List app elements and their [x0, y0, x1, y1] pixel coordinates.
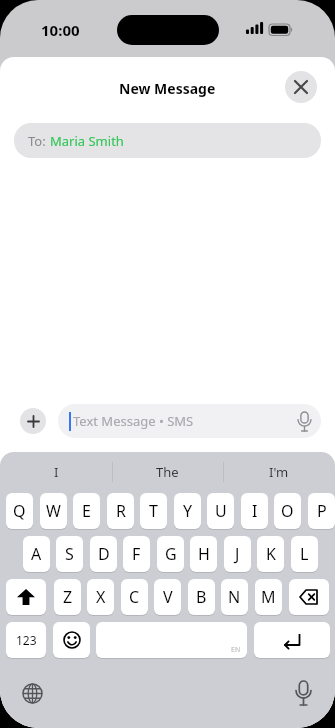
- button[interactable]: B: [188, 579, 215, 615]
- button[interactable]: D: [90, 536, 117, 572]
- staticText: B: [196, 586, 207, 608]
- button[interactable]: X: [87, 579, 114, 615]
- button[interactable]: Q: [6, 493, 33, 529]
- staticText: 10:00: [41, 20, 80, 40]
- button[interactable]: I: [0, 460, 112, 484]
- staticText: R: [116, 500, 126, 522]
- staticText: I: [54, 463, 59, 481]
- staticText: E: [82, 500, 91, 522]
- button[interactable]: I: [241, 493, 268, 529]
- button[interactable]: F: [123, 536, 150, 572]
- button[interactable]: C: [121, 579, 148, 615]
- button[interactable]: The: [112, 460, 223, 484]
- staticText: Q: [13, 500, 26, 522]
- button[interactable]: J: [224, 536, 251, 572]
- staticText: New Message: [119, 79, 216, 98]
- button[interactable]: [289, 679, 317, 707]
- staticText: H: [198, 543, 210, 565]
- button[interactable]: A: [23, 536, 50, 572]
- button[interactable]: U: [207, 493, 234, 529]
- staticText: N: [228, 586, 241, 608]
- button[interactable]: Text Message • SMS: [58, 404, 321, 438]
- button[interactable]: H: [190, 536, 217, 572]
- staticText: I'm: [269, 463, 289, 481]
- button[interactable]: I'm: [223, 460, 335, 484]
- staticText: P: [317, 500, 327, 522]
- staticText: X: [96, 586, 106, 608]
- button[interactable]: [18, 679, 46, 707]
- staticText: S: [65, 543, 74, 565]
- button[interactable]: N: [221, 579, 248, 615]
- button[interactable]: K: [257, 536, 284, 572]
- button[interactable]: Y: [174, 493, 201, 529]
- staticText: J: [235, 543, 240, 565]
- button[interactable]: EN: [96, 622, 247, 658]
- button[interactable]: E: [73, 493, 100, 529]
- staticText: O: [281, 500, 294, 522]
- staticText: V: [163, 586, 173, 608]
- staticText: Maria Smith: [50, 132, 124, 150]
- button[interactable]: R: [107, 493, 134, 529]
- staticText: 123: [16, 632, 37, 648]
- button[interactable]: [285, 71, 317, 103]
- staticText: A: [31, 543, 42, 565]
- button[interactable]: [53, 622, 90, 658]
- button[interactable]: [20, 408, 46, 434]
- staticText: W: [46, 500, 61, 522]
- staticText: Y: [183, 500, 193, 522]
- staticText: K: [266, 543, 276, 565]
- button[interactable]: P: [308, 493, 335, 529]
- staticText: F: [132, 543, 141, 565]
- staticText: M: [261, 586, 276, 608]
- button[interactable]: V: [154, 579, 181, 615]
- button[interactable]: M: [255, 579, 282, 615]
- button[interactable]: Z: [54, 579, 81, 615]
- staticText: Z: [63, 586, 73, 608]
- staticText: T: [149, 500, 158, 522]
- staticText: U: [215, 500, 227, 522]
- button[interactable]: To:: [14, 123, 321, 158]
- staticText: G: [165, 543, 177, 565]
- staticText: EN: [231, 645, 241, 655]
- button[interactable]: G: [157, 536, 184, 572]
- button[interactable]: O: [274, 493, 301, 529]
- staticText: C: [129, 586, 140, 608]
- button[interactable]: [289, 579, 329, 615]
- button[interactable]: W: [40, 493, 67, 529]
- button[interactable]: 123: [6, 622, 46, 658]
- staticText: D: [98, 543, 110, 565]
- button[interactable]: [254, 622, 330, 658]
- button[interactable]: [6, 579, 46, 615]
- staticText: I: [252, 500, 258, 522]
- staticText: The: [156, 463, 179, 481]
- staticText: To:: [28, 132, 50, 150]
- button[interactable]: T: [140, 493, 167, 529]
- staticText: Text Message • SMS: [73, 412, 194, 430]
- staticText: L: [300, 543, 309, 565]
- button[interactable]: L: [291, 536, 318, 572]
- button[interactable]: S: [56, 536, 83, 572]
